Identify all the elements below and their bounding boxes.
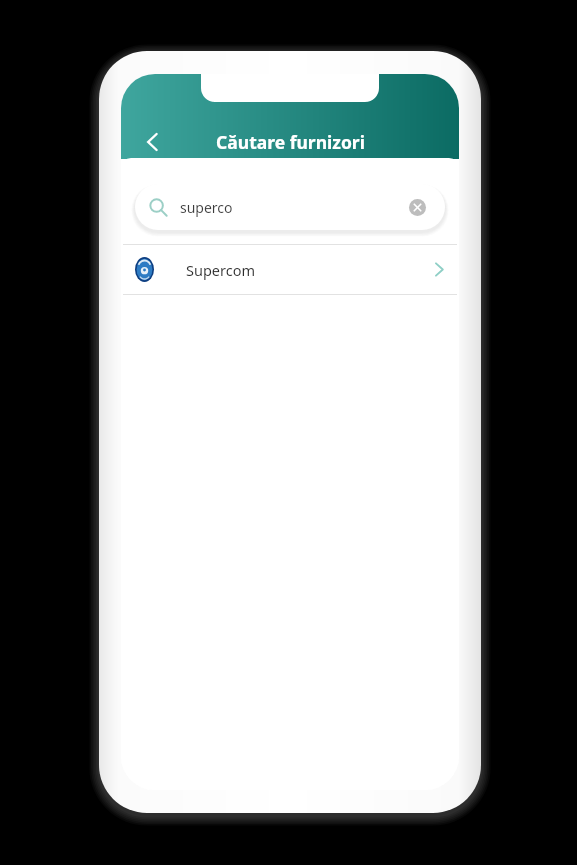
staticText: superco bbox=[180, 198, 403, 217]
button[interactable]: superco bbox=[135, 184, 445, 230]
staticText: Căutare furnizori bbox=[216, 130, 365, 154]
button[interactable]: Back bbox=[131, 120, 175, 164]
staticText: Supercom bbox=[186, 260, 434, 280]
button[interactable]: Supercom bbox=[121, 245, 459, 294]
button[interactable]: Clear search bbox=[403, 193, 431, 221]
